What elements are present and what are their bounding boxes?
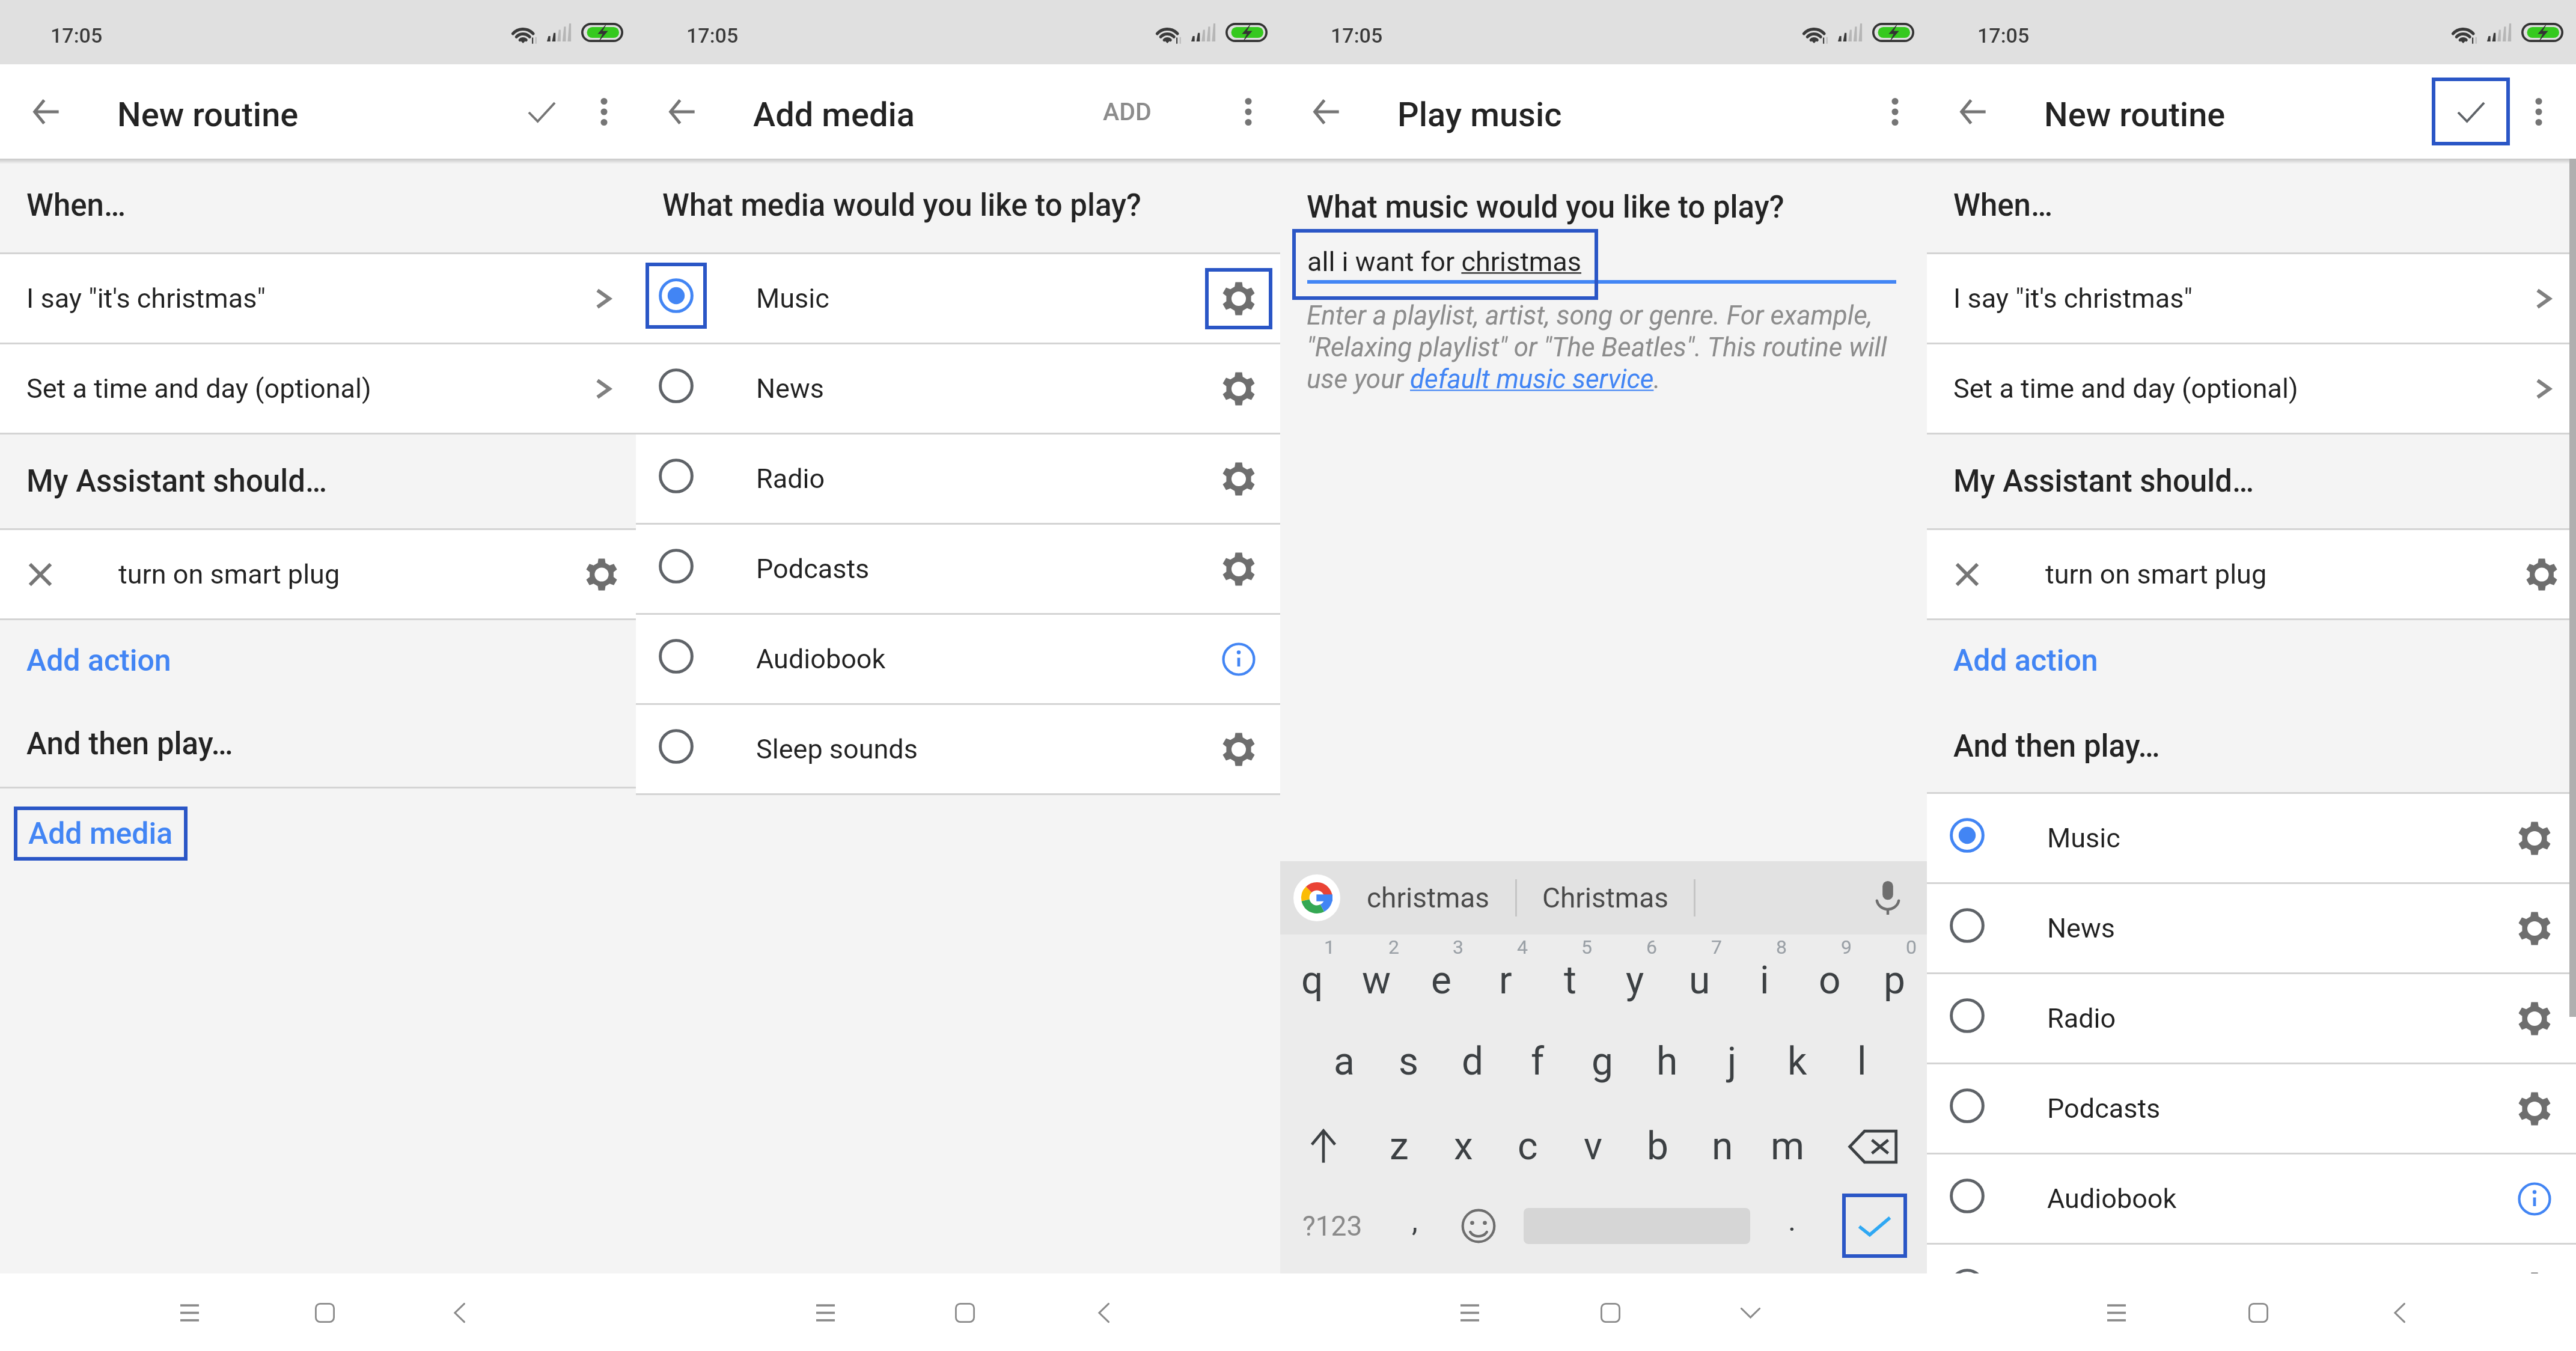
button[interactable]: Back xyxy=(2368,1281,2431,1344)
button[interactable]: Settings xyxy=(1205,268,1272,329)
button[interactable]: Settings xyxy=(1205,719,1272,780)
button[interactable]: y xyxy=(1602,935,1667,1019)
button[interactable]: Podcasts xyxy=(1927,1064,2576,1153)
staticText: My Assistant should… xyxy=(1953,463,2254,499)
button[interactable]: News xyxy=(1927,884,2576,972)
button[interactable]: News xyxy=(636,344,1280,433)
button[interactable]: Remove action xyxy=(1927,530,2576,618)
button[interactable]: More options xyxy=(1219,83,1277,141)
button[interactable]: Music xyxy=(1927,794,2576,882)
button[interactable]: Home xyxy=(2227,1281,2289,1344)
staticText: Audiobook xyxy=(2047,1183,2177,1215)
button[interactable]: More options xyxy=(575,83,633,141)
staticText: 17:05 xyxy=(686,23,739,47)
button[interactable]: christmas xyxy=(1367,882,1490,914)
button[interactable]: Sleep sounds xyxy=(636,705,1280,793)
button[interactable]: Settings xyxy=(2501,898,2568,959)
button[interactable]: . xyxy=(1762,1183,1822,1268)
button[interactable]: x xyxy=(1431,1104,1495,1189)
button[interactable]: Add media xyxy=(14,807,188,861)
button[interactable]: Recent apps xyxy=(158,1281,221,1344)
button[interactable]: Emoji xyxy=(1445,1183,1512,1268)
button[interactable]: Space xyxy=(1512,1183,1762,1268)
button[interactable]: Navigate up xyxy=(17,83,75,141)
button[interactable]: Add action xyxy=(0,639,179,682)
button[interactable]: Remove action xyxy=(1940,547,1994,602)
button[interactable]: More options xyxy=(2510,83,2568,141)
button[interactable]: Settings xyxy=(2501,1078,2568,1139)
button[interactable]: n xyxy=(1690,1104,1755,1189)
button[interactable]: Christmas xyxy=(1542,882,1668,914)
button[interactable]: Settings xyxy=(1205,538,1272,600)
button[interactable]: Audiobook xyxy=(1927,1154,2576,1243)
button[interactable]: l xyxy=(1830,1019,1894,1104)
button[interactable]: i xyxy=(1732,935,1797,1019)
button[interactable]: Home xyxy=(293,1281,356,1344)
button[interactable]: Recent apps xyxy=(1438,1281,1501,1344)
button[interactable]: Radio xyxy=(636,435,1280,523)
button[interactable]: u xyxy=(1667,935,1732,1019)
button[interactable]: Backspace xyxy=(1820,1104,1927,1189)
button[interactable]: Navigate up xyxy=(1298,83,1355,141)
button[interactable]: d xyxy=(1441,1019,1505,1104)
button[interactable]: Shift xyxy=(1280,1104,1367,1189)
button[interactable]: f xyxy=(1505,1019,1570,1104)
button[interactable]: m xyxy=(1755,1104,1820,1189)
button[interactable]: Sleep sounds xyxy=(1927,1245,2576,1273)
button[interactable]: a xyxy=(1312,1019,1376,1104)
button[interactable]: q xyxy=(1280,935,1344,1019)
button[interactable]: w xyxy=(1344,935,1409,1019)
button[interactable]: Navigate up xyxy=(653,83,711,141)
button[interactable]: Recent apps xyxy=(794,1281,856,1344)
button[interactable]: e xyxy=(1409,935,1473,1019)
button[interactable]: ADD xyxy=(1091,79,1219,144)
button[interactable]: z xyxy=(1367,1104,1431,1189)
button[interactable]: I say "it's christmas" xyxy=(1927,254,2576,343)
button[interactable]: Voice input xyxy=(1861,871,1915,925)
button[interactable]: o xyxy=(1797,935,1862,1019)
button[interactable]: More options xyxy=(1866,83,1924,141)
button[interactable]: Action settings xyxy=(2515,547,2569,602)
button[interactable]: Radio xyxy=(1927,974,2576,1063)
button[interactable]: Settings xyxy=(2501,988,2568,1049)
button[interactable]: s xyxy=(1376,1019,1441,1104)
button[interactable]: Add action xyxy=(1927,639,2105,682)
button[interactable]: Home xyxy=(933,1281,996,1344)
button[interactable]: g xyxy=(1570,1019,1635,1104)
button[interactable]: I say "it's christmas" xyxy=(0,254,636,343)
button[interactable]: j xyxy=(1700,1019,1765,1104)
button[interactable]: More information xyxy=(2501,1168,2568,1230)
button[interactable]: c xyxy=(1495,1104,1560,1189)
button[interactable]: Podcasts xyxy=(636,525,1280,613)
button[interactable]: Home xyxy=(1579,1281,1641,1344)
button[interactable]: v xyxy=(1560,1104,1625,1189)
button[interactable]: Save routine xyxy=(2432,78,2510,145)
button[interactable]: Action settings xyxy=(575,547,629,602)
button[interactable]: Recent apps xyxy=(2085,1281,2147,1344)
button[interactable]: Settings xyxy=(1205,448,1272,510)
button[interactable]: p xyxy=(1862,935,1927,1019)
button[interactable]: ?123 xyxy=(1280,1183,1384,1268)
button[interactable]: Set a time and day (optional) xyxy=(0,344,636,433)
button[interactable]: Back xyxy=(1072,1281,1135,1344)
button[interactable]: Remove action xyxy=(0,530,636,618)
button[interactable]: Hide keyboard xyxy=(1719,1281,1781,1344)
button[interactable]: Enter xyxy=(1822,1183,1927,1268)
button[interactable]: k xyxy=(1765,1019,1830,1104)
button[interactable]: t xyxy=(1537,935,1602,1019)
button[interactable]: Back xyxy=(428,1281,490,1344)
staticText: Sleep sounds xyxy=(756,733,918,765)
button[interactable]: Settings xyxy=(1205,358,1272,419)
button[interactable]: , xyxy=(1384,1183,1445,1268)
button[interactable]: Remove action xyxy=(13,547,67,602)
button[interactable]: b xyxy=(1625,1104,1690,1189)
button[interactable]: Save routine xyxy=(508,78,575,145)
button[interactable]: h xyxy=(1635,1019,1700,1104)
button[interactable]: r xyxy=(1473,935,1537,1019)
button[interactable]: More information xyxy=(1205,629,1272,690)
button[interactable]: Set a time and day (optional) xyxy=(1927,344,2576,433)
button[interactable]: Settings xyxy=(2501,808,2568,869)
button[interactable]: Navigate up xyxy=(1944,83,2002,141)
button[interactable]: Music xyxy=(636,254,1280,343)
button[interactable]: Audiobook xyxy=(636,615,1280,703)
